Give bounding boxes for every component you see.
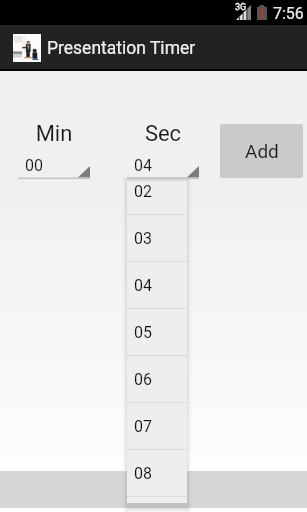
staticText: Add — [245, 140, 279, 162]
other: Presentation Timer — [13, 34, 41, 62]
button[interactable]: 03 — [127, 215, 187, 261]
staticText: 07 — [134, 417, 152, 436]
staticText: 05 — [134, 323, 152, 342]
button[interactable]: 07 — [127, 403, 187, 449]
staticText: Sec — [127, 121, 199, 147]
staticText: 08 — [134, 464, 152, 483]
button[interactable]: 05 — [127, 309, 187, 355]
staticText: 04 — [134, 276, 152, 295]
button[interactable]: 04 — [127, 152, 199, 179]
staticText: 02 — [134, 182, 152, 201]
button[interactable]: 06 — [127, 356, 187, 402]
button[interactable]: 08 — [127, 450, 187, 496]
staticText: Min — [18, 121, 90, 147]
staticText: 03 — [134, 229, 152, 248]
button[interactable]: 02 — [127, 181, 187, 214]
staticText: 00 — [25, 156, 43, 175]
staticText: 04 — [134, 156, 152, 175]
button[interactable]: 04 — [127, 262, 187, 308]
staticText: Presentation Timer — [47, 38, 196, 59]
staticText: 06 — [134, 370, 152, 389]
staticText: 7:56 — [273, 4, 304, 23]
button[interactable]: Add — [220, 124, 303, 178]
button[interactable]: 00 — [18, 152, 90, 179]
staticText: 3G — [235, 2, 247, 13]
